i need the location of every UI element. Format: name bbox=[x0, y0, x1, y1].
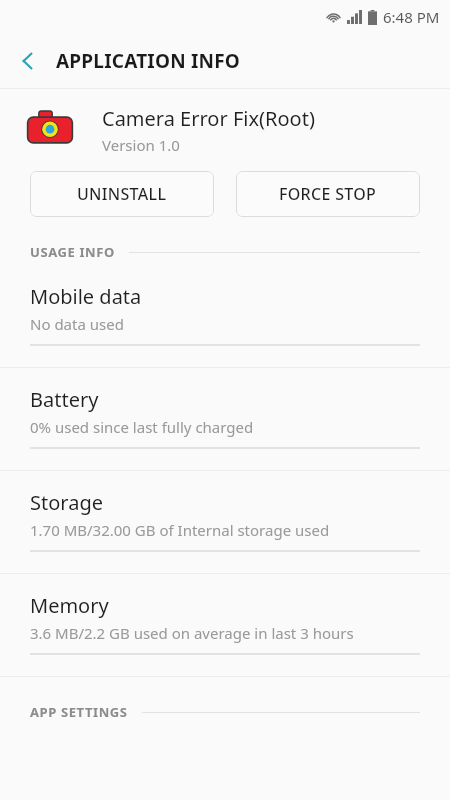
staticText: Mobile data bbox=[30, 283, 142, 310]
staticText: Camera Error Fix(Root) bbox=[102, 105, 315, 132]
staticText: APP SETTINGS bbox=[30, 703, 128, 721]
staticText: Storage bbox=[30, 489, 103, 516]
button[interactable]: Back bbox=[0, 34, 56, 88]
staticText: Battery bbox=[30, 386, 99, 413]
button[interactable]: Memory bbox=[0, 574, 450, 677]
staticText: UNINSTALL bbox=[77, 183, 167, 205]
button[interactable]: FORCE STOP bbox=[236, 171, 420, 217]
staticText: 6:48 PM bbox=[383, 7, 440, 27]
staticText: Version 1.0 bbox=[102, 135, 180, 155]
staticText: USAGE INFO bbox=[30, 243, 115, 261]
staticText: 3.6 MB/2.2 GB used on average in last 3 … bbox=[30, 623, 354, 643]
button[interactable]: Storage bbox=[0, 471, 450, 574]
button[interactable]: Mobile data bbox=[0, 265, 450, 368]
staticText: 1.70 MB/32.00 GB of Internal storage use… bbox=[30, 520, 330, 540]
staticText: APPLICATION INFO bbox=[56, 48, 241, 74]
staticText: FORCE STOP bbox=[279, 183, 377, 205]
staticText: Memory bbox=[30, 592, 109, 619]
button[interactable]: Battery bbox=[0, 368, 450, 471]
staticText: 0% used since last fully charged bbox=[30, 417, 254, 437]
staticText: No data used bbox=[30, 314, 124, 334]
button[interactable]: UNINSTALL bbox=[30, 171, 214, 217]
